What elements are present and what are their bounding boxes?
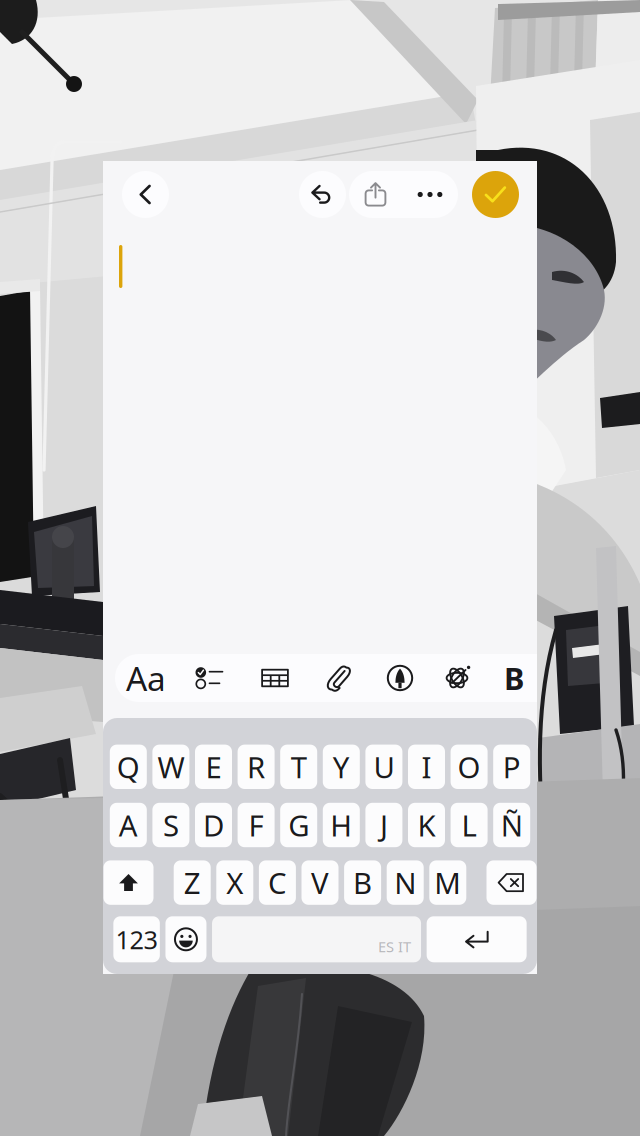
staticText: R (247, 747, 265, 786)
button[interactable]: Back (121, 171, 170, 218)
button[interactable]: V (301, 860, 338, 905)
button[interactable]: Attach file (307, 654, 371, 702)
staticText: X (226, 863, 243, 902)
button[interactable]: Z (174, 860, 211, 905)
staticText: O (458, 747, 481, 786)
button[interactable]: J (365, 803, 402, 847)
button[interactable]: H (323, 803, 360, 847)
button[interactable]: Markup (371, 654, 429, 702)
button[interactable]: M (429, 860, 466, 905)
staticText: F (249, 805, 264, 844)
staticText: I (562, 658, 574, 698)
staticText: B (353, 863, 372, 902)
staticText: E (205, 747, 221, 786)
staticText: H (330, 805, 352, 844)
button[interactable]: Return (427, 916, 527, 962)
button[interactable]: D (195, 803, 232, 847)
button[interactable]: A (110, 803, 147, 847)
button[interactable]: C (259, 860, 296, 905)
staticText: W (157, 747, 184, 786)
staticText: L (462, 805, 477, 844)
staticText: Y (333, 747, 350, 786)
button[interactable]: Italic (541, 654, 595, 702)
button[interactable]: U (365, 745, 402, 789)
staticText: Aa (126, 656, 166, 700)
staticText: S (163, 805, 179, 844)
button[interactable]: O (451, 745, 488, 789)
button[interactable]: I (408, 745, 445, 789)
button[interactable]: Text style (115, 654, 177, 702)
button[interactable]: Checklist (177, 654, 243, 702)
button[interactable]: B (344, 860, 381, 905)
staticText: U (373, 747, 394, 786)
button[interactable]: Ñ (493, 803, 530, 847)
button[interactable]: L (451, 803, 488, 847)
button[interactable]: 123 (113, 916, 160, 962)
staticText: D (203, 805, 224, 844)
button[interactable]: Done (472, 171, 519, 218)
button[interactable]: X (216, 860, 253, 905)
button[interactable]: Shift (103, 860, 153, 905)
button[interactable]: Share (349, 171, 402, 218)
staticText: G (288, 805, 309, 844)
button[interactable]: T (280, 745, 317, 789)
staticText: V (311, 863, 329, 902)
staticText: Z (184, 863, 201, 902)
button[interactable]: Y (323, 745, 360, 789)
button[interactable]: N (387, 860, 424, 905)
button[interactable]: S (152, 803, 189, 847)
staticText: ES IT (378, 937, 411, 956)
staticText: 123 (116, 922, 158, 956)
staticText: J (380, 805, 388, 844)
button[interactable]: Emoji (165, 916, 206, 962)
button[interactable]: K (408, 803, 445, 847)
button[interactable]: Space (212, 916, 421, 962)
button[interactable]: Delete (486, 860, 536, 905)
button[interactable]: E (195, 745, 232, 789)
staticText: B (504, 658, 524, 698)
staticText: A (119, 805, 138, 844)
staticText: N (394, 863, 416, 902)
button[interactable]: Undo (299, 171, 346, 218)
button[interactable]: R (238, 745, 275, 789)
staticText: M (434, 863, 461, 902)
button[interactable]: F (238, 803, 275, 847)
staticText: C (268, 863, 287, 902)
staticText: P (503, 747, 521, 786)
button[interactable]: Writing tools (429, 654, 487, 702)
button[interactable]: Q (110, 745, 147, 789)
staticText: T (291, 747, 307, 786)
button[interactable]: P (493, 745, 530, 789)
staticText: I (421, 747, 431, 786)
button[interactable]: G (280, 803, 317, 847)
button[interactable]: Bold (487, 654, 541, 702)
staticText: Q (117, 747, 140, 786)
button[interactable]: W (152, 745, 189, 789)
staticText: K (417, 805, 435, 844)
button[interactable]: Table (243, 654, 307, 702)
button[interactable]: More (402, 171, 458, 218)
staticText: Ñ (501, 805, 523, 844)
